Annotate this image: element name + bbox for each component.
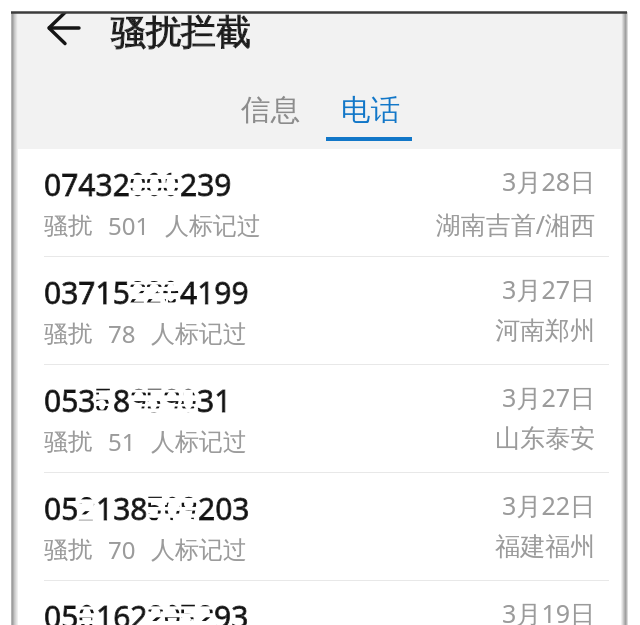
button[interactable]: 053 <box>12 365 623 473</box>
staticText: 053 <box>44 380 96 421</box>
staticText: 电话 <box>341 92 400 129</box>
staticText: 93 <box>214 596 249 625</box>
staticText: 03715 <box>44 272 130 313</box>
staticText: 239 <box>180 164 232 205</box>
staticText: 3月28日 <box>502 164 595 198</box>
staticText: 骚扰拦截 <box>111 13 251 54</box>
staticText: 51 <box>108 425 136 458</box>
staticText: 骚扰 <box>44 427 92 457</box>
staticText: 山东泰安 <box>495 423 595 454</box>
staticText: 05 <box>44 596 79 625</box>
staticText: 人标记过 <box>151 427 247 457</box>
button[interactable]: 03715 <box>12 257 623 365</box>
staticText: 03715 <box>44 272 130 313</box>
staticText: 骚扰拦截 <box>111 13 251 54</box>
button[interactable]: 信息 <box>227 88 314 133</box>
staticText: 203 <box>198 488 250 529</box>
staticText: 239 <box>180 164 232 205</box>
staticText: 3月27日 <box>502 272 595 306</box>
staticText: 8 <box>113 380 131 421</box>
button[interactable]: 05 <box>12 473 623 581</box>
button[interactable]: 电话 <box>327 88 414 133</box>
staticText: 162 <box>96 596 148 625</box>
staticText: 湖南吉首/湘西 <box>435 207 595 241</box>
staticText: 8 <box>113 380 131 421</box>
staticText: 138 <box>96 488 148 529</box>
staticText: 70 <box>108 533 136 566</box>
staticText: 人标记过 <box>151 535 247 565</box>
staticText: 河南郑州 <box>495 315 595 346</box>
button[interactable]: 05 <box>12 581 623 625</box>
staticText: 4199 <box>180 272 249 313</box>
staticText: 501 <box>108 209 150 242</box>
staticText: 3月22日 <box>502 488 595 522</box>
button[interactable]: 07432 <box>12 149 623 257</box>
staticText: 人标记过 <box>165 211 261 241</box>
staticText: 93 <box>214 596 249 625</box>
staticText: 人标记过 <box>151 319 247 349</box>
staticText: 3月27日 <box>502 380 595 414</box>
staticText: 053 <box>44 380 96 421</box>
button[interactable]: Back <box>42 13 104 69</box>
staticText: 78 <box>108 317 136 350</box>
staticText: 05 <box>44 488 79 529</box>
staticText: 骚扰 <box>44 535 92 565</box>
staticText: 3月19日 <box>502 596 595 625</box>
staticText: 07432 <box>44 164 130 205</box>
staticText: 07432 <box>44 164 130 205</box>
staticText: 138 <box>96 488 148 529</box>
staticText: 骚扰 <box>44 319 92 349</box>
staticText: 162 <box>96 596 148 625</box>
staticText: 福建福州 <box>495 531 595 562</box>
staticText: 骚扰 <box>44 211 92 241</box>
staticText: 4199 <box>180 272 249 313</box>
staticText: 05 <box>44 488 79 529</box>
staticText: 05 <box>44 596 79 625</box>
staticText: 信息 <box>241 92 300 129</box>
staticText: 31 <box>197 380 232 421</box>
staticText: 203 <box>198 488 250 529</box>
staticText: 31 <box>197 380 232 421</box>
